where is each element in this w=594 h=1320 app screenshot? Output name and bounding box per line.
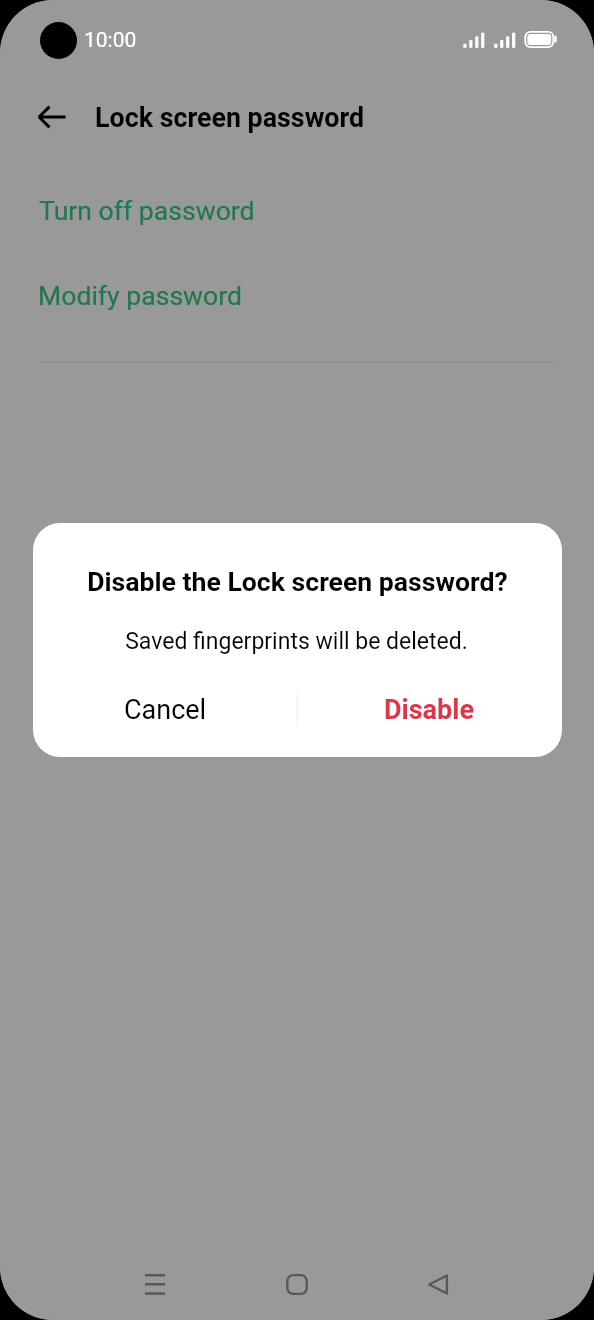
staticText: Turn off password [39, 195, 255, 226]
button[interactable]: Turn off password [1, 171, 557, 249]
button[interactable]: Back [400, 1258, 476, 1310]
staticText: Cancel [124, 694, 207, 726]
staticText: Disable the Lock screen password? [33, 566, 562, 597]
staticText: 10:00 [84, 28, 137, 53]
button[interactable]: Modify password [0, 256, 556, 334]
button[interactable]: Cancel [33, 678, 297, 740]
staticText: Lock screen password [95, 102, 365, 133]
staticText: Modify password [38, 280, 243, 311]
button[interactable]: Navigate up [14, 79, 89, 154]
button[interactable]: Home [259, 1258, 335, 1310]
button[interactable]: Disable [297, 678, 562, 740]
staticText: Disable [384, 694, 475, 726]
staticText: Saved fingerprints will be deleted. [33, 628, 561, 655]
button[interactable]: Recent apps [117, 1258, 193, 1310]
